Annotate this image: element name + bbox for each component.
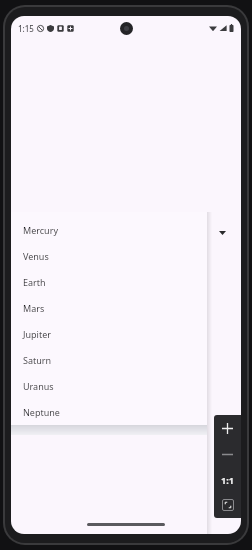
staticText: 1:15 (18, 23, 34, 34)
staticText: Jupiter (23, 328, 51, 340)
button[interactable]: Zoom in (214, 415, 241, 442)
button[interactable]: Mars (11, 295, 207, 321)
button[interactable]: Uranus (11, 373, 207, 399)
button[interactable]: 1:1 (214, 467, 241, 492)
staticText: Earth (23, 276, 46, 288)
staticText: 1:1 (221, 474, 234, 486)
staticText: Mercury (23, 224, 58, 236)
staticText: Saturn (23, 354, 52, 366)
button[interactable]: Zoom out (214, 442, 241, 467)
button[interactable]: Saturn (11, 347, 207, 373)
button[interactable]: Jupiter (11, 321, 207, 347)
button[interactable]: Fit to screen (214, 492, 241, 518)
staticText: Mars (23, 302, 45, 314)
button[interactable]: Neptune (11, 399, 207, 425)
button[interactable]: Venus (11, 243, 207, 269)
button[interactable]: Open dropdown (215, 225, 229, 239)
button[interactable]: Mercury (11, 217, 207, 243)
staticText: Venus (23, 250, 49, 262)
staticText: Neptune (23, 406, 60, 418)
button[interactable] (11, 425, 207, 435)
button[interactable]: Earth (11, 269, 207, 295)
staticText: Uranus (23, 380, 54, 392)
